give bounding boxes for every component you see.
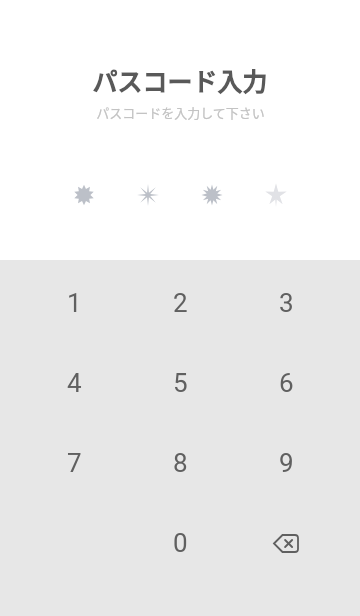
staticText: 2 (173, 288, 188, 318)
button[interactable]: 3 (233, 263, 339, 343)
staticText: 5 (173, 368, 188, 398)
button[interactable]: 4 (21, 343, 127, 423)
button[interactable]: 9 (233, 423, 339, 503)
staticText: 6 (279, 368, 294, 398)
button[interactable]: 1 (21, 263, 127, 343)
button[interactable]: 8 (127, 423, 233, 503)
staticText: 4 (67, 368, 82, 398)
button[interactable]: 6 (233, 343, 339, 423)
button[interactable]: 2 (127, 263, 233, 343)
staticText: 1 (67, 288, 82, 318)
button[interactable]: 0 (127, 503, 233, 583)
staticText: 7 (67, 448, 82, 478)
staticText: 8 (173, 448, 188, 478)
button[interactable]: Backspace, delete last digit (233, 503, 339, 583)
staticText: 0 (173, 528, 188, 558)
staticText: パスコード入力 (92, 62, 268, 98)
staticText: 9 (279, 448, 294, 478)
staticText: 3 (279, 288, 294, 318)
staticText: パスコードを入力して下さい (96, 103, 265, 122)
button[interactable]: 7 (21, 423, 127, 503)
button[interactable]: 5 (127, 343, 233, 423)
